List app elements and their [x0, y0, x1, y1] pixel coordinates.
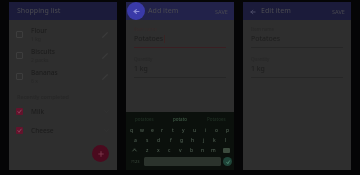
- staticText: x: [157, 147, 160, 154]
- button[interactable]: Back: [248, 7, 257, 16]
- staticText: SAVE: [215, 8, 228, 15]
- staticText: c: [168, 147, 171, 154]
- button[interactable]: t: [167, 125, 178, 135]
- button[interactable]: Uncheck Milk: [16, 108, 23, 115]
- staticText: o: [215, 127, 219, 134]
- button[interactable]: r: [157, 125, 167, 135]
- button[interactable]: m: [208, 145, 219, 155]
- staticText: Edit item: [261, 6, 291, 16]
- staticText: Cheese: [31, 126, 103, 135]
- button[interactable]: o: [211, 125, 222, 135]
- button[interactable]: n: [197, 145, 208, 155]
- button[interactable]: Uncheck Cheese: [9, 121, 117, 140]
- button[interactable]: j: [198, 135, 209, 145]
- button[interactable]: p: [222, 125, 233, 135]
- staticText: d: [157, 137, 161, 144]
- staticText: b: [190, 147, 194, 154]
- staticText: Add item: [148, 6, 179, 16]
- staticText: Potatoes: [251, 34, 280, 44]
- staticText: s: [146, 137, 149, 144]
- button[interactable]: c: [164, 145, 175, 155]
- button[interactable]: d: [153, 135, 165, 145]
- button[interactable]: Shift: [127, 145, 142, 155]
- staticText: w: [140, 127, 144, 134]
- button[interactable]: x: [153, 145, 164, 155]
- button[interactable]: u: [189, 125, 200, 135]
- button[interactable]: b: [186, 145, 197, 155]
- button[interactable]: Uncheck Milk: [9, 102, 117, 121]
- button[interactable]: Add item: [92, 145, 109, 162]
- staticText: y: [182, 127, 185, 134]
- staticText: 1 kg: [251, 64, 265, 74]
- staticText: f: [170, 137, 172, 144]
- staticText: potatoes: [135, 116, 154, 122]
- button[interactable]: q: [127, 125, 137, 135]
- staticText: n: [201, 147, 205, 154]
- staticText: p: [226, 127, 230, 134]
- staticText: l: [225, 137, 227, 144]
- button[interactable]: Mark Bananas done: [16, 73, 23, 80]
- staticText: Potatoes: [134, 34, 163, 44]
- button[interactable]: ?123: [128, 157, 142, 166]
- staticText: t: [172, 127, 174, 134]
- button[interactable]: SAVE: [215, 8, 228, 15]
- staticText: a: [134, 137, 137, 144]
- button[interactable]: Mark Biscuits done: [16, 52, 23, 59]
- button[interactable]: Mark Flour done: [16, 31, 23, 38]
- staticText: potato: [173, 116, 187, 122]
- button[interactable]: Potatoes: [198, 114, 234, 123]
- button[interactable]: Back: [127, 2, 145, 20]
- staticText: r: [161, 127, 164, 134]
- staticText: Shopping list: [17, 6, 61, 16]
- button[interactable]: w: [137, 125, 147, 135]
- staticText: k: [213, 137, 216, 144]
- staticText: Biscuits: [31, 47, 55, 56]
- staticText: h: [191, 137, 195, 144]
- button[interactable]: e: [147, 125, 157, 135]
- button[interactable]: Backspace: [219, 145, 233, 155]
- button[interactable]: k: [209, 135, 220, 145]
- staticText: g: [180, 137, 184, 144]
- staticText: m: [211, 147, 216, 154]
- staticText: Flour: [31, 26, 47, 35]
- button[interactable]: h: [187, 135, 198, 145]
- button[interactable]: a: [129, 135, 141, 145]
- button[interactable]: Uncheck Cheese: [16, 127, 23, 134]
- button[interactable]: i: [200, 125, 211, 135]
- staticText: 1 kg: [134, 64, 148, 74]
- staticText: SAVE: [332, 8, 345, 15]
- button[interactable]: z: [142, 145, 153, 155]
- staticText: ?123: [131, 159, 140, 164]
- button[interactable]: l: [220, 135, 231, 145]
- button[interactable]: y: [178, 125, 189, 135]
- staticText: Potatoes: [207, 116, 226, 122]
- button[interactable]: potato: [162, 114, 198, 123]
- button[interactable]: s: [141, 135, 153, 145]
- staticText: j: [203, 137, 205, 144]
- button[interactable]: potatoes: [126, 114, 162, 123]
- staticText: q: [130, 127, 134, 134]
- button[interactable]: f: [165, 135, 176, 145]
- staticText: u: [193, 127, 197, 134]
- button[interactable]: v: [175, 145, 186, 155]
- staticText: e: [151, 127, 154, 134]
- button[interactable]: Enter: [223, 157, 232, 166]
- button[interactable]: SAVE: [332, 8, 345, 15]
- button[interactable]: g: [176, 135, 187, 145]
